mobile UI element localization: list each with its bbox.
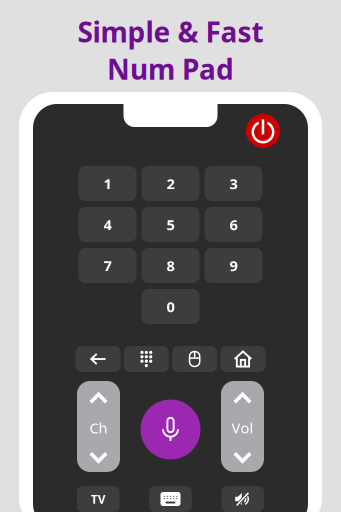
button[interactable]: Home [220,346,265,372]
staticText: 5 [166,215,174,234]
button[interactable]: TV [77,486,119,512]
staticText: 8 [166,256,174,275]
button[interactable]: 0 [141,289,199,324]
staticText: 1 [103,174,111,193]
staticText: 2 [166,174,174,193]
staticText: Simple & Fast [77,13,263,50]
button[interactable]: Keypad [124,346,169,372]
staticText: 9 [229,256,237,275]
staticText: 0 [166,297,174,316]
staticText: Vol [231,418,253,437]
button[interactable]: Back [75,346,120,372]
button[interactable]: Ch [77,381,120,472]
staticText: 3 [229,174,237,193]
staticText: 7 [103,256,111,275]
staticText: 6 [229,215,237,234]
staticText: Num Pad [107,50,234,87]
button[interactable]: Power [246,114,280,148]
staticText: 4 [103,215,111,234]
button[interactable]: Voice [140,393,200,459]
button[interactable]: 5 [141,207,199,242]
button[interactable]: 4 [78,207,136,242]
staticText: TV [91,491,106,507]
button[interactable]: 2 [141,166,199,201]
button[interactable]: Keyboard [149,486,192,512]
button[interactable]: 9 [204,248,262,283]
button[interactable]: 8 [141,248,199,283]
button[interactable]: 6 [204,207,262,242]
button[interactable]: Vol [221,381,264,472]
staticText: Ch [89,418,107,437]
button[interactable]: Mouse [172,346,217,372]
button[interactable]: 7 [78,248,136,283]
button[interactable]: 1 [78,166,136,201]
button[interactable]: Mute [221,486,264,512]
button[interactable]: 3 [204,166,262,201]
